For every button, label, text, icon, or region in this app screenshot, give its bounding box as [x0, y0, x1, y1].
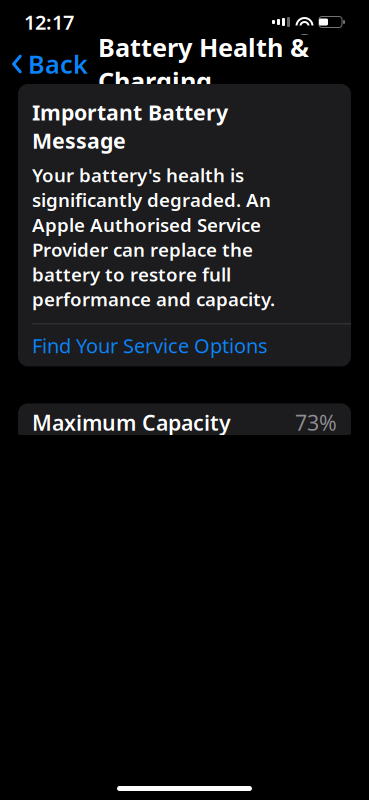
staticText: Maximum Capacity: [32, 408, 231, 436]
staticText: Back: [28, 47, 88, 81]
button[interactable]: Back: [0, 44, 369, 84]
staticText: 12:17: [24, 9, 74, 35]
staticText: Important Battery Message: [32, 98, 228, 155]
staticText: Optimised Battery Charging: [32, 734, 222, 791]
staticText: Your battery's health is significantly d…: [32, 163, 275, 311]
staticText: Battery Health & Charging: [98, 30, 309, 98]
button[interactable]: Find Your Service Options: [18, 324, 351, 366]
staticText: 73%: [295, 408, 337, 436]
staticText: Find Your Service Options: [32, 332, 268, 359]
